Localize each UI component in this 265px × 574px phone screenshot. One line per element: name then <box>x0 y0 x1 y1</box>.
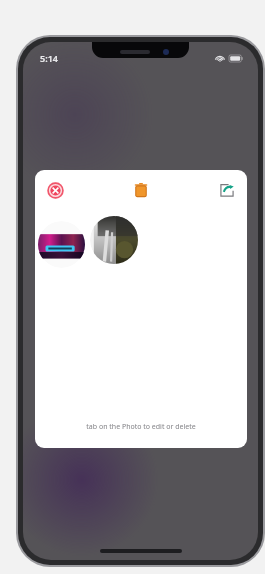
button[interactable]: Close <box>43 178 67 202</box>
button[interactable]: Delete <box>128 177 154 203</box>
button[interactable]: Photo 1 <box>38 221 85 268</box>
button[interactable]: Share <box>215 178 239 202</box>
staticText: tab on the Photo to edit or delete <box>35 422 247 432</box>
staticText: 5:14 <box>40 52 58 64</box>
button[interactable]: Photo 2 <box>90 216 138 264</box>
